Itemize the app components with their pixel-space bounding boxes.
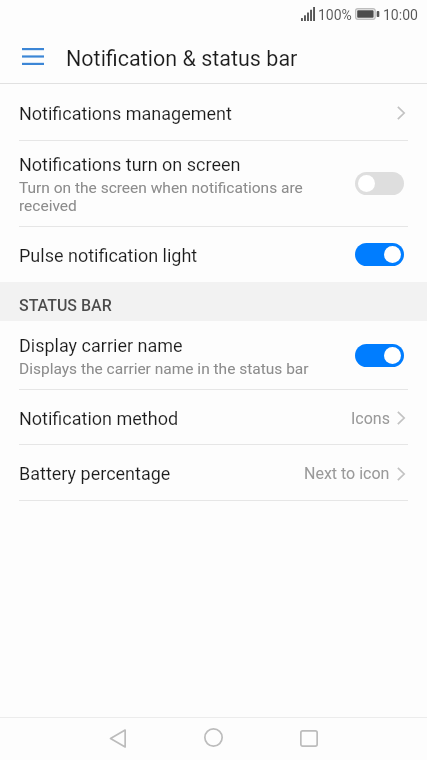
button[interactable]: Navigation menu	[3, 26, 63, 83]
staticText: Pulse notification light	[19, 245, 198, 266]
button[interactable]: Switch on	[355, 344, 404, 367]
staticText: Displays the carrier name in the status …	[19, 360, 309, 378]
button[interactable]: Home	[190, 716, 236, 759]
button[interactable]: Battery percentage	[0, 445, 427, 500]
staticText: STATUS BAR	[19, 296, 112, 315]
button[interactable]: Recent apps	[286, 717, 332, 760]
staticText: Notifications management	[19, 103, 232, 124]
button[interactable]: Pulse notification light	[0, 227, 427, 282]
staticText: Icons	[351, 409, 390, 428]
button[interactable]: Notification method	[0, 390, 427, 444]
staticText: Notifications turn on screen	[19, 154, 241, 175]
staticText: Display carrier name	[19, 335, 183, 356]
button[interactable]: Switch on	[355, 243, 404, 266]
button[interactable]: Notifications management	[0, 84, 427, 140]
button[interactable]: Display carrier name	[0, 321, 427, 389]
staticText: Notification method	[19, 408, 179, 429]
staticText: Battery percentage	[19, 463, 171, 484]
staticText: Turn on the screen when notifications ar…	[19, 179, 309, 215]
staticText: Next to icon	[304, 464, 390, 483]
button[interactable]: Notifications turn on screen	[0, 141, 427, 226]
staticText: Notification & status bar	[66, 46, 298, 71]
staticText: 100%	[318, 7, 352, 23]
staticText: 10:00	[383, 7, 418, 23]
button[interactable]: Switch off	[355, 172, 404, 195]
button[interactable]: Back	[94, 717, 140, 760]
